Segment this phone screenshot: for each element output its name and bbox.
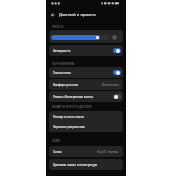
staticText: ЦВЕТА bbox=[52, 139, 61, 143]
staticText: Автояркость bbox=[53, 49, 71, 53]
staticText: Под ЕГ темная bbox=[97, 150, 119, 154]
staticText: Экранное разрешение bbox=[53, 125, 85, 129]
button[interactable] bbox=[113, 70, 121, 75]
staticText: Выключено bbox=[102, 83, 119, 87]
button[interactable]: Комфорт для глаз bbox=[49, 79, 123, 90]
button[interactable]: Назад bbox=[49, 11, 56, 18]
staticText: Размер и стиль текста bbox=[53, 115, 84, 119]
button[interactable]: Цветовая гамма и температура bbox=[49, 159, 123, 170]
button[interactable] bbox=[113, 48, 121, 53]
button[interactable] bbox=[113, 94, 121, 99]
staticText: ЯРКОСТЬ bbox=[52, 25, 64, 29]
button[interactable]: Экранное разрешение bbox=[53, 122, 123, 132]
staticText: РАЗМЕР И ЧЕТКОСТЬ ДИСПЛЕЯ bbox=[52, 105, 92, 109]
staticText: Режим «Электронная книга» bbox=[53, 95, 94, 99]
staticText: Дисплей и яркость bbox=[59, 12, 96, 17]
staticText: НОЧНОЙ РЕЖИМ bbox=[52, 62, 75, 66]
button[interactable]: Настройки яркости bbox=[111, 34, 118, 41]
button[interactable]: Автояркость bbox=[49, 45, 123, 56]
staticText: Цветовая гамма и температура bbox=[53, 163, 98, 167]
button[interactable]: Схема bbox=[49, 146, 123, 157]
button[interactable]: Темная тема bbox=[49, 67, 123, 78]
staticText: Темная тема bbox=[53, 71, 71, 75]
staticText: Схема bbox=[53, 150, 62, 154]
button[interactable]: Режим «Электронная книга» bbox=[49, 91, 123, 102]
button[interactable]: Размер и стиль текста bbox=[53, 111, 123, 122]
staticText: Комфорт для глаз bbox=[53, 83, 79, 87]
button[interactable]: Яркость bbox=[51, 35, 109, 40]
